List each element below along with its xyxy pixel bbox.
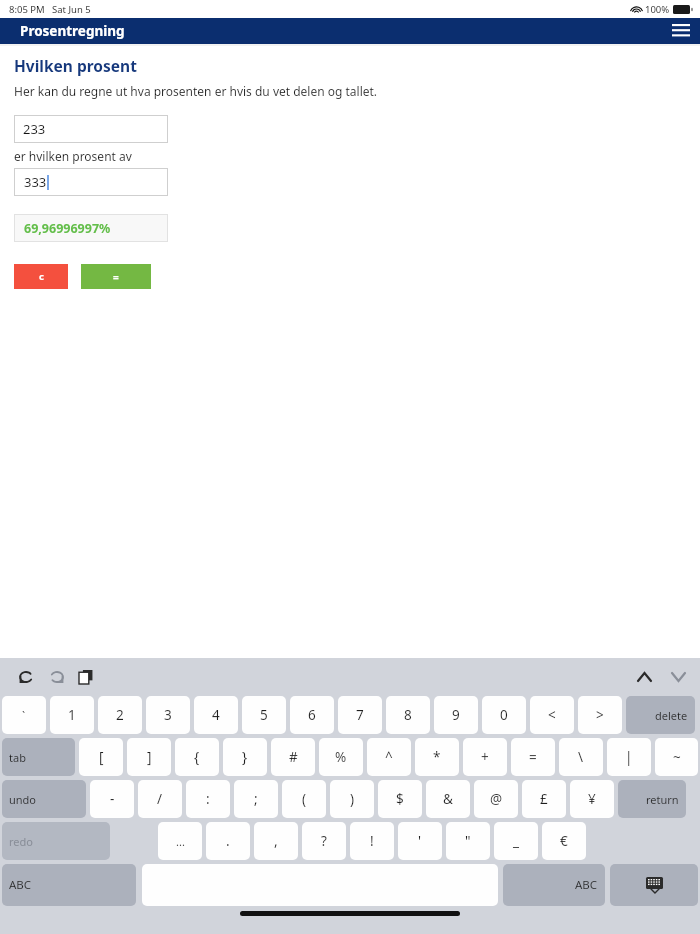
button[interactable]: # [271, 738, 315, 776]
staticText: ABC [9, 877, 32, 893]
staticText: % [335, 748, 347, 766]
staticText: | [625, 748, 633, 766]
other: Hide keyboard [610, 864, 698, 906]
button[interactable]: ^ [367, 738, 411, 776]
button[interactable]: Keyboard key [610, 864, 698, 906]
staticText: 69,96996997% [24, 220, 111, 237]
button[interactable]: = [81, 264, 151, 289]
staticText: £ [540, 790, 548, 808]
button[interactable]: 6 [290, 696, 334, 734]
button[interactable]: _ [494, 822, 538, 860]
button[interactable]: redo [2, 822, 110, 860]
button[interactable]: @ [474, 780, 518, 818]
staticText: = [529, 748, 537, 766]
button[interactable]: ' [398, 822, 442, 860]
button[interactable]: . [206, 822, 250, 860]
button[interactable]: ( [282, 780, 326, 818]
button[interactable]: = [511, 738, 555, 776]
button[interactable]: 8 [386, 696, 430, 734]
button[interactable]: 333 [14, 168, 168, 196]
button[interactable]: / [138, 780, 182, 818]
staticText: 333 [24, 173, 47, 191]
staticText: \ [578, 748, 584, 766]
staticText: # [289, 748, 298, 766]
button[interactable]: ABC [2, 864, 136, 906]
button[interactable]: 5 [242, 696, 286, 734]
staticText: ' [418, 832, 422, 850]
button[interactable]: Previous field [630, 663, 658, 691]
button[interactable]: Menu [668, 18, 694, 44]
button[interactable]: [ [79, 738, 123, 776]
button[interactable]: \ [559, 738, 603, 776]
button[interactable]: & [426, 780, 470, 818]
button[interactable]: Redo [43, 664, 69, 690]
button[interactable]: Undo [13, 664, 39, 690]
button[interactable]: | [607, 738, 651, 776]
button[interactable]: ` [2, 696, 46, 734]
button[interactable]: < [530, 696, 574, 734]
button[interactable]: ? [302, 822, 346, 860]
button[interactable]: delete [626, 696, 695, 734]
staticText: ? [321, 832, 327, 850]
staticText: + [481, 748, 489, 766]
button[interactable]: Next field [664, 663, 692, 691]
staticText: > [596, 706, 604, 724]
button[interactable]: * [415, 738, 459, 776]
staticText: ^ [385, 748, 393, 766]
button[interactable]: { [175, 738, 219, 776]
button[interactable]: ¥ [570, 780, 614, 818]
button[interactable]: 4 [194, 696, 238, 734]
button[interactable]: 233 [14, 115, 168, 143]
button[interactable]: + [463, 738, 507, 776]
button[interactable]: } [223, 738, 267, 776]
staticText: 8 [404, 706, 412, 724]
button[interactable]: undo [2, 780, 86, 818]
button[interactable]: c [14, 264, 68, 289]
button[interactable]: Paste [73, 664, 99, 690]
staticText: ) [350, 790, 355, 808]
staticText: er hvilken prosent av [14, 148, 132, 164]
button[interactable]: 2 [98, 696, 142, 734]
button[interactable]: " [446, 822, 490, 860]
button[interactable]: % [319, 738, 363, 776]
button[interactable]: 7 [338, 696, 382, 734]
button[interactable]: 0 [482, 696, 526, 734]
staticText: 3 [164, 706, 172, 724]
button[interactable]: ! [350, 822, 394, 860]
staticText: $ [396, 790, 404, 808]
button[interactable]: 9 [434, 696, 478, 734]
button[interactable]: ] [127, 738, 171, 776]
staticText: < [548, 706, 556, 724]
button[interactable]: tab [2, 738, 75, 776]
button[interactable]: £ [522, 780, 566, 818]
staticText: . [226, 832, 230, 850]
staticText: return [646, 792, 679, 807]
button[interactable]: ; [234, 780, 278, 818]
button[interactable]: $ [378, 780, 422, 818]
button[interactable]: ) [330, 780, 374, 818]
staticText: undo [9, 792, 37, 807]
button[interactable]: return [618, 780, 686, 818]
button[interactable]: 1 [50, 696, 94, 734]
staticText: 4 [212, 706, 220, 724]
button[interactable]: - [90, 780, 134, 818]
staticText: ` [22, 708, 26, 723]
button[interactable]: 3 [146, 696, 190, 734]
staticText: Prosentregning [20, 22, 125, 40]
button[interactable]: ... [158, 822, 202, 860]
button[interactable]: : [186, 780, 230, 818]
staticText: 1 [68, 706, 76, 724]
staticText: 233 [23, 120, 46, 138]
staticText: Her kan du regne ut hva prosenten er hvi… [14, 83, 378, 99]
staticText: ABC [575, 877, 598, 893]
staticText: tab [9, 750, 26, 765]
staticText: redo [9, 834, 33, 849]
button[interactable]: ABC [503, 864, 605, 906]
button[interactable]: > [578, 696, 622, 734]
button[interactable]: , [254, 822, 298, 860]
staticText: 0 [500, 706, 508, 724]
button[interactable]: ~ [655, 738, 698, 776]
button[interactable]: € [542, 822, 586, 860]
staticText: ; [254, 790, 258, 808]
